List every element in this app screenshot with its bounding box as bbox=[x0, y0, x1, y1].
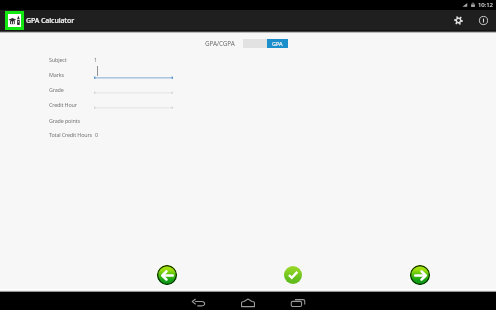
staticText: Total Credit Hours bbox=[49, 131, 92, 138]
button[interactable] bbox=[94, 63, 173, 79]
button[interactable]: GPA bbox=[243, 39, 288, 48]
button[interactable] bbox=[94, 78, 173, 94]
staticText: 10:12 bbox=[478, 1, 493, 9]
button[interactable]: Calculate bbox=[284, 266, 302, 284]
button[interactable]: Back bbox=[191, 295, 207, 310]
staticText: GPA bbox=[272, 40, 283, 48]
staticText: Credit Hour bbox=[49, 101, 77, 108]
button[interactable]: Next subject bbox=[410, 265, 430, 285]
button[interactable]: About bbox=[474, 11, 493, 30]
staticText: Subject bbox=[49, 56, 67, 63]
button[interactable]: GPA Calculator bbox=[5, 11, 74, 30]
button[interactable] bbox=[94, 93, 173, 109]
staticText: 0 bbox=[95, 131, 98, 138]
staticText: GPA/CGPA bbox=[205, 39, 235, 48]
button[interactable]: Settings bbox=[449, 11, 468, 30]
staticText: Marks bbox=[49, 71, 64, 78]
staticText: Grade points bbox=[49, 117, 80, 124]
staticText: GPA Calculator bbox=[26, 16, 74, 26]
button[interactable]: Recent apps bbox=[289, 295, 306, 310]
button[interactable]: Previous subject bbox=[157, 265, 177, 285]
staticText: Grade bbox=[49, 86, 64, 93]
button[interactable]: Home bbox=[239, 295, 256, 310]
staticText: 1 bbox=[94, 56, 97, 63]
